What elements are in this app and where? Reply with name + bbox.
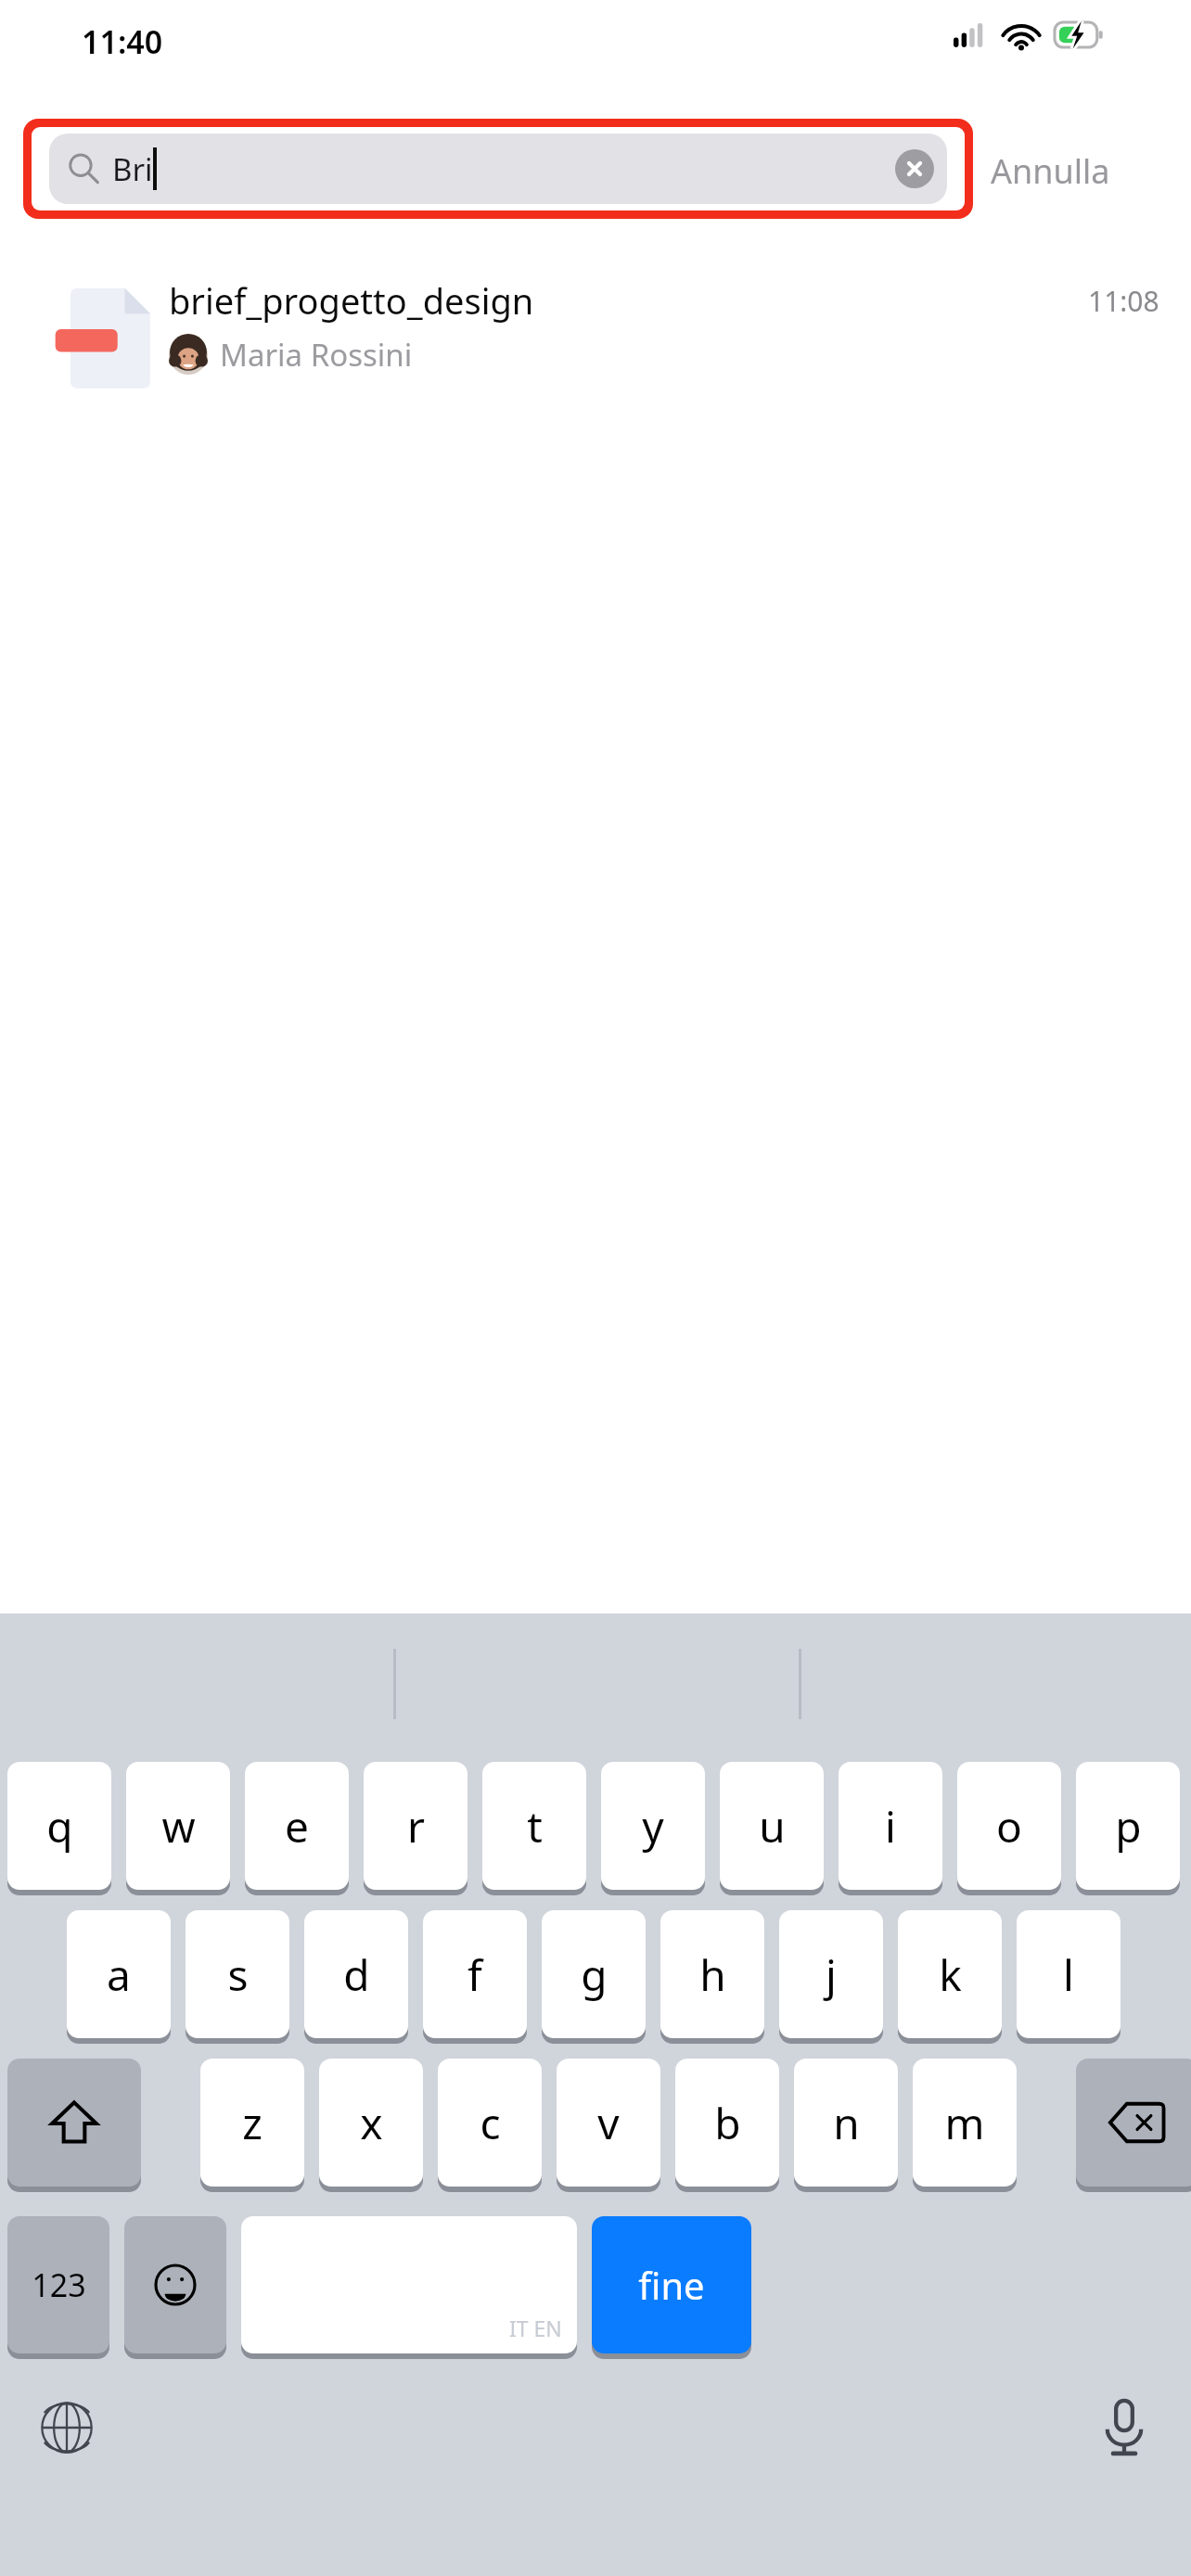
button[interactable]: s (186, 1910, 289, 2044)
button[interactable]: f (423, 1910, 527, 2044)
button[interactable]: z (200, 2059, 304, 2192)
staticText: v (597, 2094, 620, 2152)
button[interactable]: Bri (49, 134, 947, 204)
staticText: q (46, 1797, 73, 1855)
button[interactable]: Clear text (895, 149, 934, 188)
button[interactable]: Annulla (991, 148, 1110, 194)
staticText: 123 (32, 2264, 86, 2306)
staticText: j (826, 1945, 837, 2004)
button[interactable]: l (1017, 1910, 1121, 2044)
button[interactable]: h (660, 1910, 764, 2044)
staticText: o (996, 1797, 1022, 1855)
button[interactable]: Dictation (1087, 2391, 1161, 2465)
staticText: n (833, 2094, 860, 2152)
button[interactable]: u (720, 1762, 824, 1895)
button[interactable]: o (957, 1762, 1061, 1895)
button[interactable]: q (7, 1762, 111, 1895)
button[interactable]: c (438, 2059, 542, 2192)
button[interactable]: brief_progetto_design (0, 271, 1191, 393)
button[interactable]: d (304, 1910, 408, 2044)
button[interactable]: p (1076, 1762, 1180, 1895)
staticText: w (161, 1797, 196, 1855)
button[interactable]: Shift (7, 2059, 141, 2192)
staticText: Maria Rossini (220, 334, 413, 376)
staticText: Bri (112, 148, 153, 190)
staticText: a (107, 1945, 131, 2004)
staticText: l (1063, 1945, 1074, 2004)
staticText: t (527, 1797, 543, 1855)
button[interactable]: i (839, 1762, 942, 1895)
staticText: e (285, 1797, 309, 1855)
button[interactable]: Backspace (1076, 2059, 1191, 2192)
staticText: s (227, 1945, 249, 2004)
staticText: z (242, 2094, 263, 2152)
staticText: i (885, 1797, 896, 1855)
staticText: m (944, 2094, 985, 2152)
button[interactable]: g (542, 1910, 646, 2044)
staticText: k (939, 1945, 962, 2004)
staticText: y (642, 1797, 664, 1855)
button[interactable]: w (126, 1762, 230, 1895)
button[interactable]: e (245, 1762, 349, 1895)
button[interactable]: b (675, 2059, 779, 2192)
button[interactable]: k (898, 1910, 1002, 2044)
button[interactable]: y (601, 1762, 705, 1895)
button[interactable]: x (319, 2059, 423, 2192)
staticText: d (343, 1945, 370, 2004)
button[interactable]: v (557, 2059, 660, 2192)
button[interactable]: Emoji (124, 2216, 226, 2359)
staticText: 11:08 (1088, 282, 1159, 320)
button[interactable]: a (67, 1910, 171, 2044)
button[interactable]: Space (241, 2216, 577, 2359)
staticText: u (759, 1797, 786, 1855)
button[interactable]: j (779, 1910, 883, 2044)
button[interactable]: fine (592, 2216, 751, 2359)
staticText: b (714, 2094, 741, 2152)
button[interactable]: t (482, 1762, 586, 1895)
button[interactable]: n (794, 2059, 898, 2192)
button[interactable]: m (913, 2059, 1017, 2192)
staticText: x (360, 2094, 383, 2152)
staticText: g (581, 1945, 608, 2004)
button[interactable]: 123 (7, 2216, 109, 2359)
staticText: r (407, 1797, 425, 1855)
staticText: 11:40 (82, 20, 163, 63)
staticText: IT EN (509, 2314, 562, 2342)
button[interactable]: r (364, 1762, 467, 1895)
staticText: brief_progetto_design (169, 276, 534, 325)
staticText: f (467, 1945, 482, 2004)
button[interactable]: Change keyboard (30, 2391, 104, 2465)
staticText: c (480, 2094, 501, 2152)
staticText: fine (638, 2260, 705, 2310)
staticText: h (699, 1945, 726, 2004)
staticText: p (1115, 1797, 1142, 1855)
